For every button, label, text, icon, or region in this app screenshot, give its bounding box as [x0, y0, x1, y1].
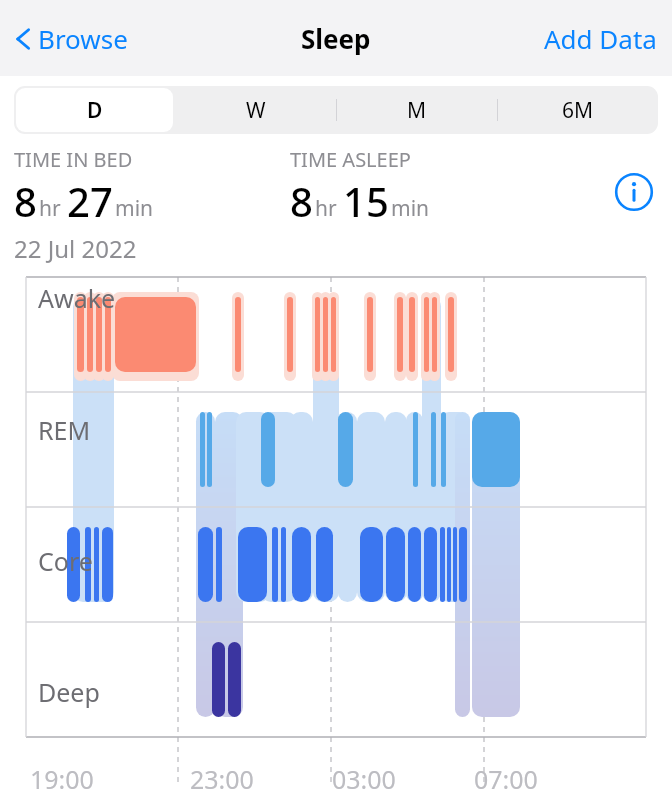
button[interactable]: Browse	[12, 13, 131, 64]
staticText: 07:00	[474, 762, 538, 796]
button[interactable]: D	[14, 86, 175, 134]
staticText: 8	[14, 174, 37, 228]
staticText: Core	[38, 544, 93, 578]
staticText: hr	[39, 194, 61, 223]
staticText: 8	[290, 174, 313, 228]
staticText: min	[115, 194, 154, 223]
staticText: 15	[343, 174, 389, 228]
staticText: D	[87, 96, 103, 125]
button[interactable]: M	[336, 86, 497, 134]
staticText: 27	[67, 174, 113, 228]
staticText: 22 Jul 2022	[14, 232, 137, 265]
staticText: Add Data	[544, 21, 657, 56]
staticText: Sleep	[301, 21, 371, 56]
button[interactable]: About sleep data	[610, 168, 658, 216]
staticText: 6M	[562, 96, 594, 125]
staticText: 03:00	[332, 762, 396, 796]
staticText: REM	[38, 413, 91, 447]
staticText: Browse	[38, 21, 128, 56]
staticText: W	[246, 96, 266, 125]
button[interactable]: Add Data	[541, 13, 660, 64]
staticText: hr	[315, 194, 337, 223]
staticText: Awake	[38, 281, 116, 315]
button[interactable]: W	[175, 86, 336, 134]
staticText: Deep	[38, 675, 100, 709]
staticText: 19:00	[30, 762, 94, 796]
staticText: 23:00	[190, 762, 254, 796]
staticText: TIME ASLEEP	[290, 146, 411, 173]
button[interactable]: 6M	[497, 86, 658, 134]
staticText: min	[391, 194, 430, 223]
staticText: M	[407, 96, 427, 125]
staticText: TIME IN BED	[14, 146, 133, 173]
